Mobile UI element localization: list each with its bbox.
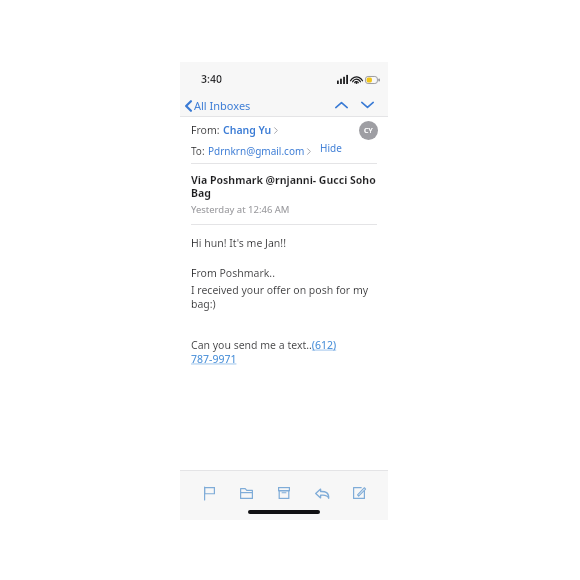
staticText: Hi hun! It's me Jan!!	[191, 236, 286, 250]
button[interactable]: Chang Yu	[223, 123, 278, 137]
staticText: CY	[364, 126, 373, 136]
staticText: From:	[191, 123, 223, 137]
button[interactable]: Hide	[320, 141, 342, 155]
button[interactable]: Can you send me a text..(612) 787-9971	[191, 338, 377, 366]
staticText: Via Poshmark @rnjanni- Gucci Soho Bag	[191, 173, 376, 200]
button[interactable]: Compose	[344, 481, 374, 505]
button[interactable]: All Inboxes	[180, 96, 257, 115]
staticText: Yesterday at 12:46 AM	[191, 203, 290, 216]
button[interactable]: Archive	[269, 481, 299, 505]
button[interactable]: Pdrnkrn@gmail.com	[208, 144, 311, 158]
button[interactable]: CY	[359, 121, 378, 140]
button[interactable]: Flag	[194, 481, 224, 505]
button[interactable]: Move to folder	[231, 481, 261, 505]
button[interactable]: Previous message	[330, 95, 352, 115]
staticText: Pdrnkrn@gmail.com	[208, 144, 305, 158]
staticText: 3:40	[201, 72, 222, 86]
staticText: I received your offer on posh for my bag…	[191, 283, 377, 311]
staticText: From Poshmark..	[191, 266, 275, 280]
staticText: To:	[191, 144, 208, 158]
staticText: Chang Yu	[223, 123, 272, 137]
staticText: All Inboxes	[194, 98, 251, 113]
button[interactable]: Next message	[356, 95, 378, 115]
button[interactable]: Reply	[307, 481, 337, 505]
